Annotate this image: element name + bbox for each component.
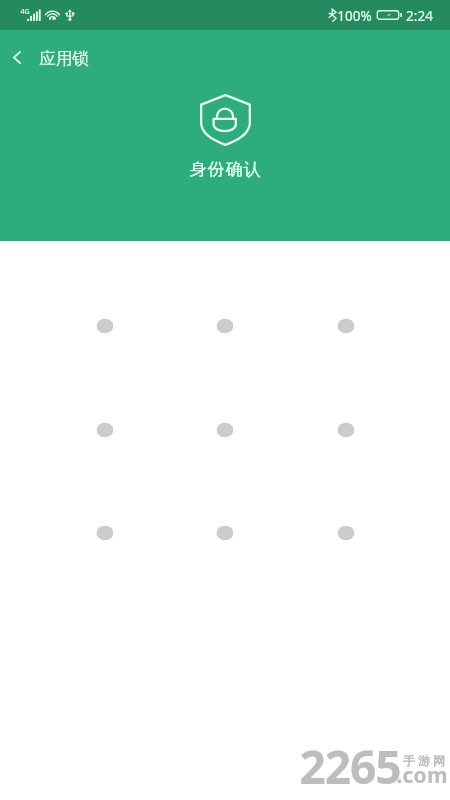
- staticText: 2:24: [406, 7, 433, 25]
- button[interactable]: Pattern point 6: [320, 404, 372, 456]
- staticText: .com: [396, 761, 448, 790]
- button[interactable]: Pattern point 2: [199, 300, 251, 352]
- button[interactable]: Pattern point 4: [79, 404, 131, 456]
- button[interactable]: Pattern point 3: [320, 300, 372, 352]
- staticText: 身份确认: [189, 159, 261, 180]
- staticText: 100%: [337, 7, 372, 25]
- staticText: 应用锁: [39, 48, 89, 69]
- button[interactable]: Pattern point 9: [320, 507, 372, 559]
- button[interactable]: Pattern point 8: [199, 507, 251, 559]
- button[interactable]: Pattern point 7: [79, 507, 131, 559]
- button[interactable]: Pattern point 1: [79, 300, 131, 352]
- staticText: 4G: [20, 7, 30, 17]
- staticText: 手游网: [403, 753, 448, 768]
- staticText: 2265: [299, 735, 401, 798]
- button[interactable]: Back: [0, 38, 33, 76]
- button[interactable]: Pattern point 5: [199, 404, 251, 456]
